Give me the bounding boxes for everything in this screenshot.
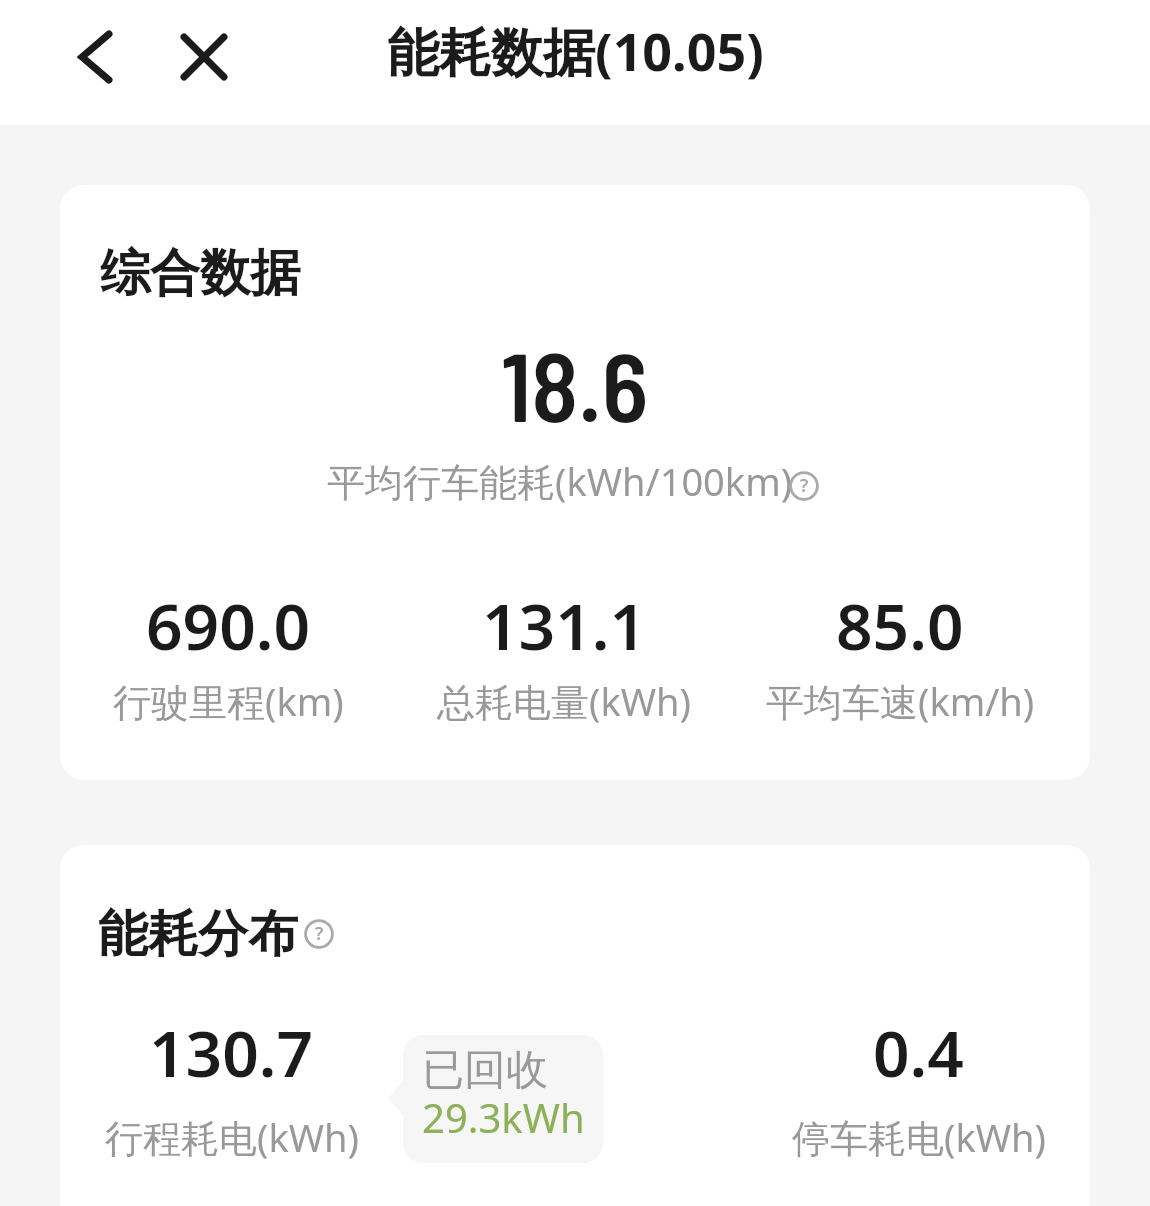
staticText: 18.6 — [501, 325, 649, 441]
button[interactable]: ? — [789, 471, 819, 501]
staticText: 已回收 — [422, 1044, 548, 1097]
staticText: 行程耗电(kWh) — [105, 1111, 359, 1163]
staticText: 29.3kWh — [422, 1090, 585, 1144]
staticText: 平均行车能耗(kWh/100km) — [327, 455, 793, 507]
button[interactable] — [168, 14, 240, 100]
staticText: 能耗数据(10.05) — [387, 15, 764, 86]
staticText: 停车耗电(kWh) — [792, 1111, 1046, 1163]
staticText: 行驶里程(km) — [113, 675, 344, 727]
staticText: 0.4 — [873, 1009, 964, 1096]
staticText: ? — [800, 473, 809, 498]
staticText: 690.0 — [146, 582, 311, 669]
staticText: 综合数据 — [100, 242, 300, 305]
staticText: ? — [315, 921, 324, 946]
staticText: 130.7 — [149, 1009, 314, 1096]
staticText: 85.0 — [836, 582, 964, 669]
staticText: 131.1 — [482, 582, 647, 669]
button[interactable]: ? — [304, 919, 334, 949]
button[interactable] — [60, 14, 130, 100]
staticText: 能耗分布 — [98, 903, 298, 966]
staticText: 平均车速(km/h) — [766, 675, 1035, 727]
staticText: 总耗电量(kWh) — [437, 675, 691, 727]
